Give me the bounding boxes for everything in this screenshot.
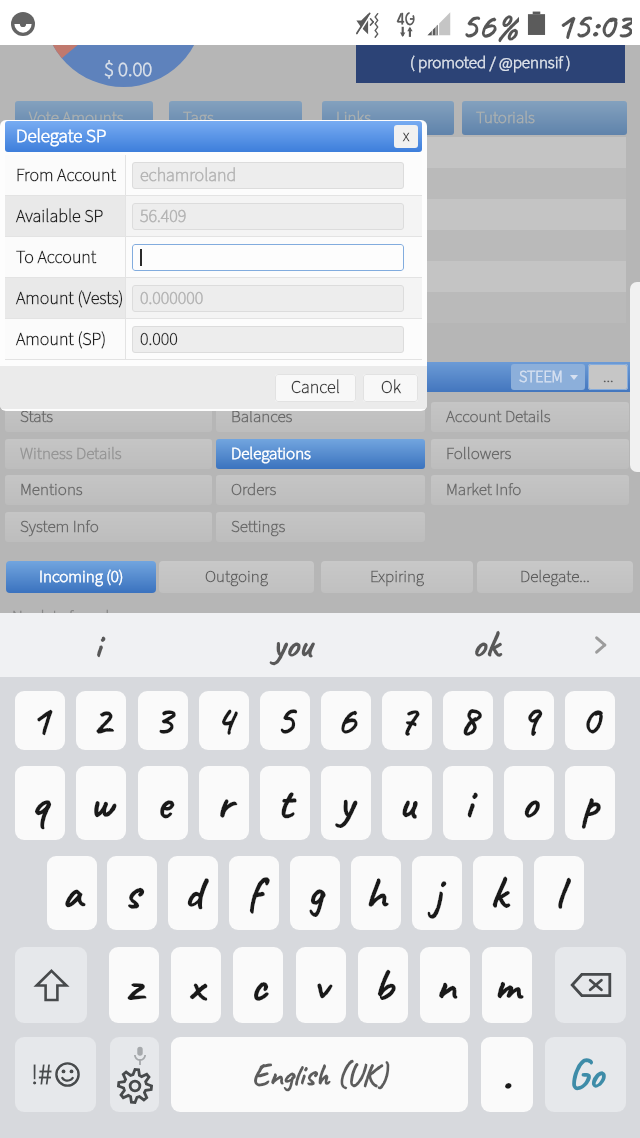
button[interactable]: Go bbox=[545, 1037, 626, 1112]
staticText: Delegate... bbox=[520, 565, 590, 589]
button[interactable]: 1 bbox=[15, 691, 65, 750]
staticText: s bbox=[124, 864, 140, 922]
button[interactable]: Market Info bbox=[431, 475, 629, 505]
button[interactable]: a bbox=[47, 856, 97, 930]
button[interactable]: Mentions bbox=[5, 475, 212, 505]
button[interactable]: 5 bbox=[260, 691, 310, 750]
button[interactable]: ( promoted / @pennsif ) bbox=[356, 0, 625, 83]
button[interactable]: w bbox=[76, 766, 126, 840]
button[interactable]: m bbox=[482, 947, 532, 1023]
button[interactable]: Expiring bbox=[321, 561, 473, 593]
button[interactable]: 0.000 bbox=[132, 326, 404, 353]
button[interactable]: Witness Details bbox=[5, 439, 212, 469]
button[interactable]: Close bbox=[394, 125, 418, 148]
button[interactable]: Followers bbox=[431, 439, 629, 469]
button[interactable]: Vote Amounts bbox=[15, 101, 153, 135]
button[interactable]: 3 bbox=[138, 691, 188, 750]
staticText: $ 0.00 bbox=[104, 54, 153, 84]
button[interactable]: 6 bbox=[321, 691, 371, 750]
button[interactable]: i bbox=[443, 766, 493, 840]
other: Notification bbox=[11, 12, 35, 36]
button[interactable]: Outgoing bbox=[159, 561, 314, 593]
button[interactable]: Tags bbox=[169, 101, 302, 135]
button[interactable]: Backspace bbox=[555, 947, 626, 1023]
staticText: c bbox=[250, 956, 267, 1014]
staticText: . bbox=[502, 1046, 512, 1104]
staticText: x bbox=[403, 125, 410, 148]
button[interactable]: echamroland bbox=[132, 162, 404, 189]
button[interactable]: v bbox=[296, 947, 346, 1023]
button[interactable]: n bbox=[420, 947, 470, 1023]
button[interactable]: Symbols and emoji bbox=[15, 1037, 96, 1112]
staticText: Incoming (0) bbox=[39, 565, 124, 589]
button[interactable]: r bbox=[199, 766, 249, 840]
button[interactable]: z bbox=[109, 947, 159, 1023]
button[interactable]: Account Details bbox=[431, 402, 629, 432]
staticText: e bbox=[156, 774, 171, 832]
button[interactable]: Delegate... bbox=[477, 561, 633, 593]
button[interactable]: 4 bbox=[199, 691, 249, 750]
button[interactable]: p bbox=[565, 766, 615, 840]
button[interactable]: Links bbox=[322, 101, 454, 135]
button[interactable]: Delegations bbox=[216, 439, 425, 469]
button[interactable]: 56.409 bbox=[132, 203, 404, 230]
button[interactable]: Balances bbox=[216, 402, 425, 432]
button[interactable]: 8 bbox=[443, 691, 493, 750]
staticText: Balances bbox=[231, 405, 293, 429]
button[interactable]: you bbox=[232, 613, 352, 677]
button[interactable] bbox=[132, 244, 404, 271]
button[interactable]: 2 bbox=[76, 691, 126, 750]
button[interactable]: u bbox=[382, 766, 432, 840]
button[interactable]: q bbox=[15, 766, 65, 840]
button[interactable]: g bbox=[290, 856, 340, 930]
button[interactable]: More suggestions bbox=[570, 613, 630, 677]
button[interactable]: STEEM bbox=[511, 364, 585, 390]
staticText: o bbox=[521, 774, 538, 832]
button[interactable]: Settings bbox=[216, 512, 425, 542]
button[interactable]: Stats bbox=[5, 402, 212, 432]
staticText: Account Details bbox=[446, 405, 551, 429]
button[interactable]: 0.000000 bbox=[132, 285, 404, 312]
staticText: Orders bbox=[231, 478, 277, 502]
button[interactable]: l bbox=[534, 856, 584, 930]
button[interactable]: Orders bbox=[216, 475, 425, 505]
staticText: System Info bbox=[20, 515, 99, 539]
staticText: t bbox=[277, 774, 293, 832]
button[interactable]: 0 bbox=[565, 691, 615, 750]
staticText: Stats bbox=[20, 405, 54, 429]
button[interactable]: Ok bbox=[363, 374, 418, 402]
staticText: Vote Amounts bbox=[29, 106, 124, 130]
button[interactable]: 7 bbox=[382, 691, 432, 750]
button[interactable]: Tutorials bbox=[462, 101, 627, 135]
button[interactable]: t bbox=[260, 766, 310, 840]
staticText: 56.409 bbox=[140, 204, 187, 230]
staticText: Ok bbox=[381, 375, 401, 401]
button[interactable]: 9 bbox=[504, 691, 554, 750]
button[interactable]: f bbox=[229, 856, 279, 930]
button[interactable]: d bbox=[168, 856, 218, 930]
button[interactable]: . bbox=[481, 1037, 533, 1112]
staticText: Amount (SP) bbox=[16, 327, 107, 353]
button[interactable]: s bbox=[107, 856, 157, 930]
staticText: u bbox=[398, 774, 416, 832]
button[interactable]: k bbox=[473, 856, 523, 930]
staticText: Outgoing bbox=[205, 565, 268, 589]
button[interactable]: Cancel bbox=[275, 374, 356, 402]
button[interactable]: x bbox=[171, 947, 221, 1023]
button[interactable]: English (UK) bbox=[171, 1037, 468, 1112]
button[interactable]: e bbox=[138, 766, 188, 840]
button[interactable]: System Info bbox=[5, 512, 212, 542]
staticText: m bbox=[494, 956, 520, 1014]
button[interactable]: b bbox=[358, 947, 408, 1023]
button[interactable]: j bbox=[412, 856, 462, 930]
button[interactable]: o bbox=[504, 766, 554, 840]
button[interactable]: Keyboard settings bbox=[110, 1037, 159, 1112]
button[interactable]: c bbox=[233, 947, 283, 1023]
button[interactable]: y bbox=[321, 766, 371, 840]
button[interactable]: ok bbox=[428, 613, 544, 677]
button[interactable]: Shift bbox=[15, 947, 87, 1023]
button[interactable]: Incoming (0) bbox=[6, 561, 156, 593]
button[interactable]: h bbox=[351, 856, 401, 930]
button[interactable]: i bbox=[40, 613, 155, 677]
button[interactable]: More options bbox=[588, 364, 628, 390]
